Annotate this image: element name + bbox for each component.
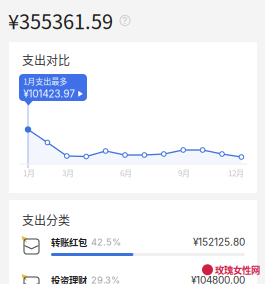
staticText: 1月 [23,167,35,179]
staticText: 12月 [228,167,244,179]
staticText: ¥355361.59 [8,6,113,35]
staticText: 29.3% [91,274,120,284]
staticText: ? [122,15,127,26]
staticText: ¥152125.80 [193,236,245,248]
button[interactable]: 投资理财 [9,271,257,284]
staticText: ¥101423.97 [23,88,75,100]
staticText: 玫瑰女性网 [215,263,260,276]
staticText: 支出分类 [22,211,70,228]
staticText: 3月 [62,167,74,179]
staticText: 1月支出最多 [23,75,67,87]
staticText: ¥104800.00 [191,274,245,284]
staticText: 9月 [178,167,190,179]
staticText: 支出对比 [22,51,70,68]
staticText: 转账红包 [51,235,87,249]
button[interactable]: 转账红包 [9,233,257,267]
staticText: 42.5% [91,236,121,248]
staticText: 6月 [120,167,132,179]
button[interactable]: 说明 [119,14,131,26]
staticText: 投资理财 [51,273,87,284]
